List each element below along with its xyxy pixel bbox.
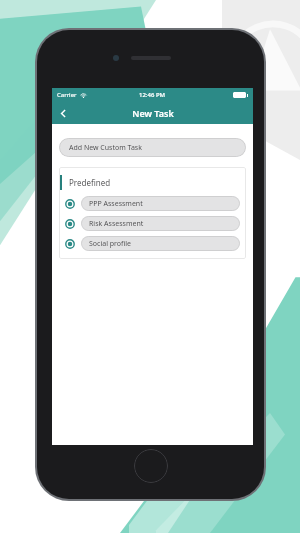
staticText: PPP Assessment [89,199,143,209]
staticText: Add New Custom Task [69,143,142,153]
staticText: 12:46 PM [139,91,166,99]
button[interactable]: Home [134,449,168,483]
button[interactable]: PPP Assessment [65,196,240,211]
button[interactable]: Risk Assessment [65,216,240,231]
staticText: New Task [132,107,174,119]
button[interactable]: Social profile [65,236,240,251]
staticText: Social profile [89,239,132,249]
staticText: Risk Assessment [89,219,144,229]
button[interactable]: Add New Custom Task [59,138,246,157]
staticText: Predefined [69,177,111,188]
staticText: Carrier [57,91,77,99]
button[interactable]: Back [52,102,74,124]
